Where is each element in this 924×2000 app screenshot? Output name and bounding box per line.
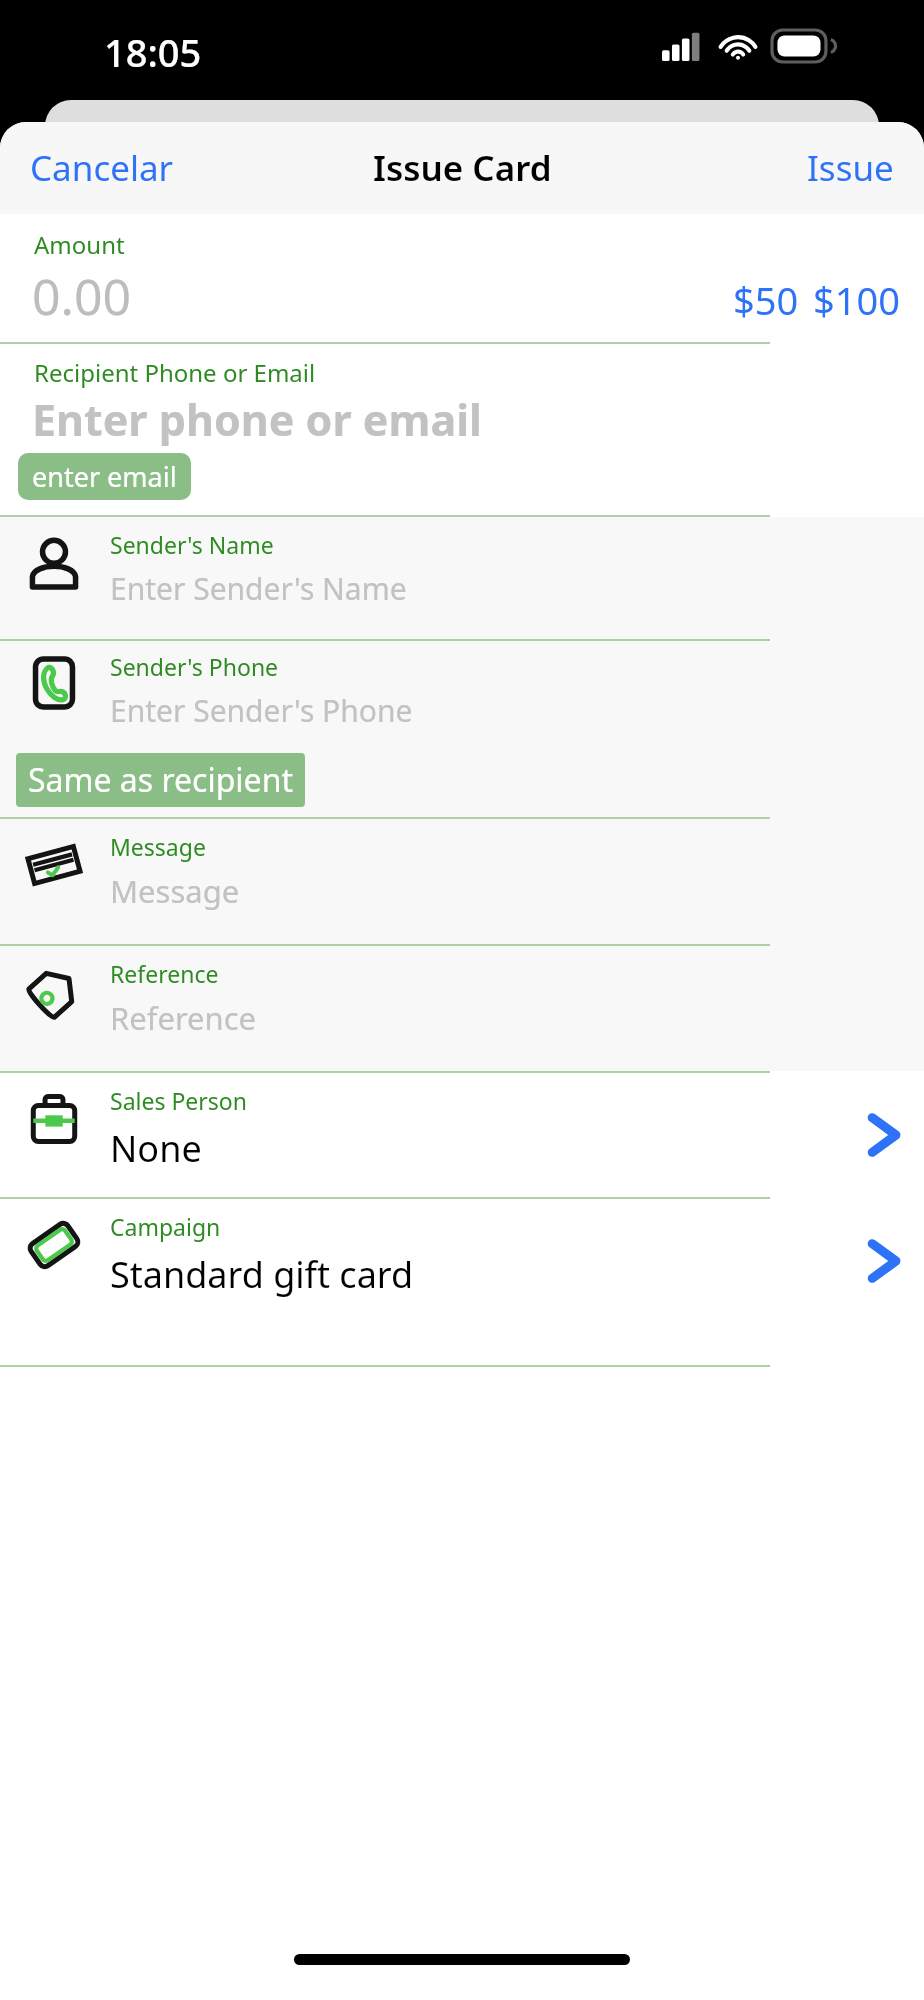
staticText: Enter Sender's Phone	[110, 690, 413, 731]
staticText: Standard gift card	[110, 1250, 414, 1299]
staticText: enter email	[32, 458, 177, 495]
staticText: Reference	[110, 997, 257, 1039]
staticText: 0.00	[32, 262, 132, 330]
button[interactable]: Message	[0, 819, 924, 944]
button[interactable]: Issue	[795, 136, 906, 200]
staticText: Issue	[807, 144, 894, 192]
staticText: Cancelar	[30, 144, 174, 192]
staticText: Issue Card	[373, 144, 552, 192]
button[interactable]: Sender's Phone	[0, 641, 924, 761]
button[interactable]: Amount	[0, 214, 924, 342]
button[interactable]: Cancelar	[18, 136, 186, 200]
button[interactable]: Sales Person	[0, 1073, 924, 1197]
staticText: Message	[110, 831, 206, 862]
staticText: Recipient Phone or Email	[34, 356, 316, 389]
button[interactable]: Select sales person	[856, 1108, 910, 1162]
staticText: Message	[110, 870, 240, 912]
staticText: Amount	[34, 228, 125, 261]
button[interactable]: Same as recipient	[16, 753, 305, 807]
button[interactable]: Enter phone or email	[32, 390, 482, 449]
button[interactable]: Sender's Name	[0, 517, 924, 639]
button[interactable]: Reference	[0, 946, 924, 1071]
staticText: Sender's Phone	[110, 651, 279, 682]
staticText: None	[110, 1124, 202, 1173]
staticText: $100	[813, 274, 900, 326]
staticText: Sender's Name	[110, 529, 274, 560]
staticText: Enter Sender's Name	[110, 568, 407, 609]
button[interactable]: $50	[727, 270, 805, 330]
staticText: Reference	[110, 958, 219, 989]
button[interactable]: Select campaign	[856, 1234, 910, 1288]
staticText: $50	[733, 274, 799, 326]
button[interactable]: Campaign	[0, 1199, 924, 1323]
staticText: Sales Person	[110, 1085, 247, 1116]
button[interactable]: enter email	[18, 453, 191, 500]
staticText: Campaign	[110, 1211, 221, 1242]
button[interactable]: $100	[809, 270, 904, 330]
staticText: 18:05	[104, 26, 202, 78]
staticText: Same as recipient	[28, 758, 293, 802]
